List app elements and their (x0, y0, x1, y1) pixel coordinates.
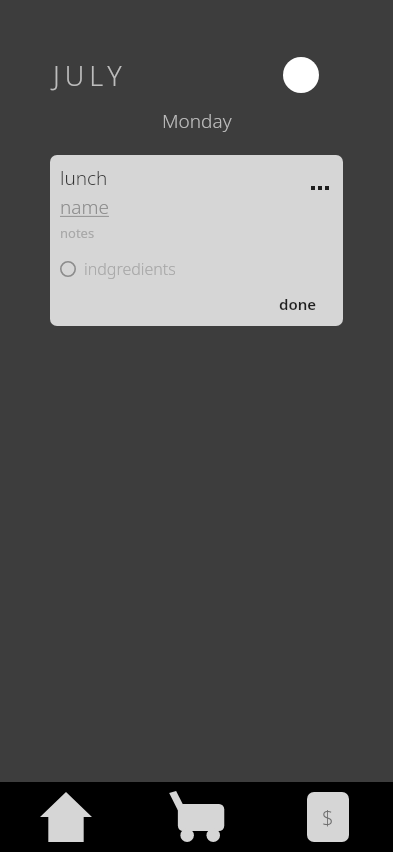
staticText: lunch (60, 165, 108, 191)
button[interactable]: indgredients (60, 258, 176, 280)
staticText: JULY (53, 57, 127, 94)
button[interactable]: name (60, 194, 109, 220)
staticText: notes (60, 224, 95, 242)
button[interactable]: More options (307, 182, 333, 194)
staticText: indgredients (84, 258, 176, 280)
button[interactable]: lunch (50, 155, 343, 326)
button[interactable]: Cart (131, 782, 262, 852)
staticText: Monday (162, 108, 232, 134)
button[interactable]: Budget (262, 782, 393, 852)
button[interactable]: Home (0, 782, 131, 852)
button[interactable]: done (279, 294, 316, 314)
staticText: $ (322, 804, 334, 831)
button[interactable]: Profile (283, 57, 319, 93)
